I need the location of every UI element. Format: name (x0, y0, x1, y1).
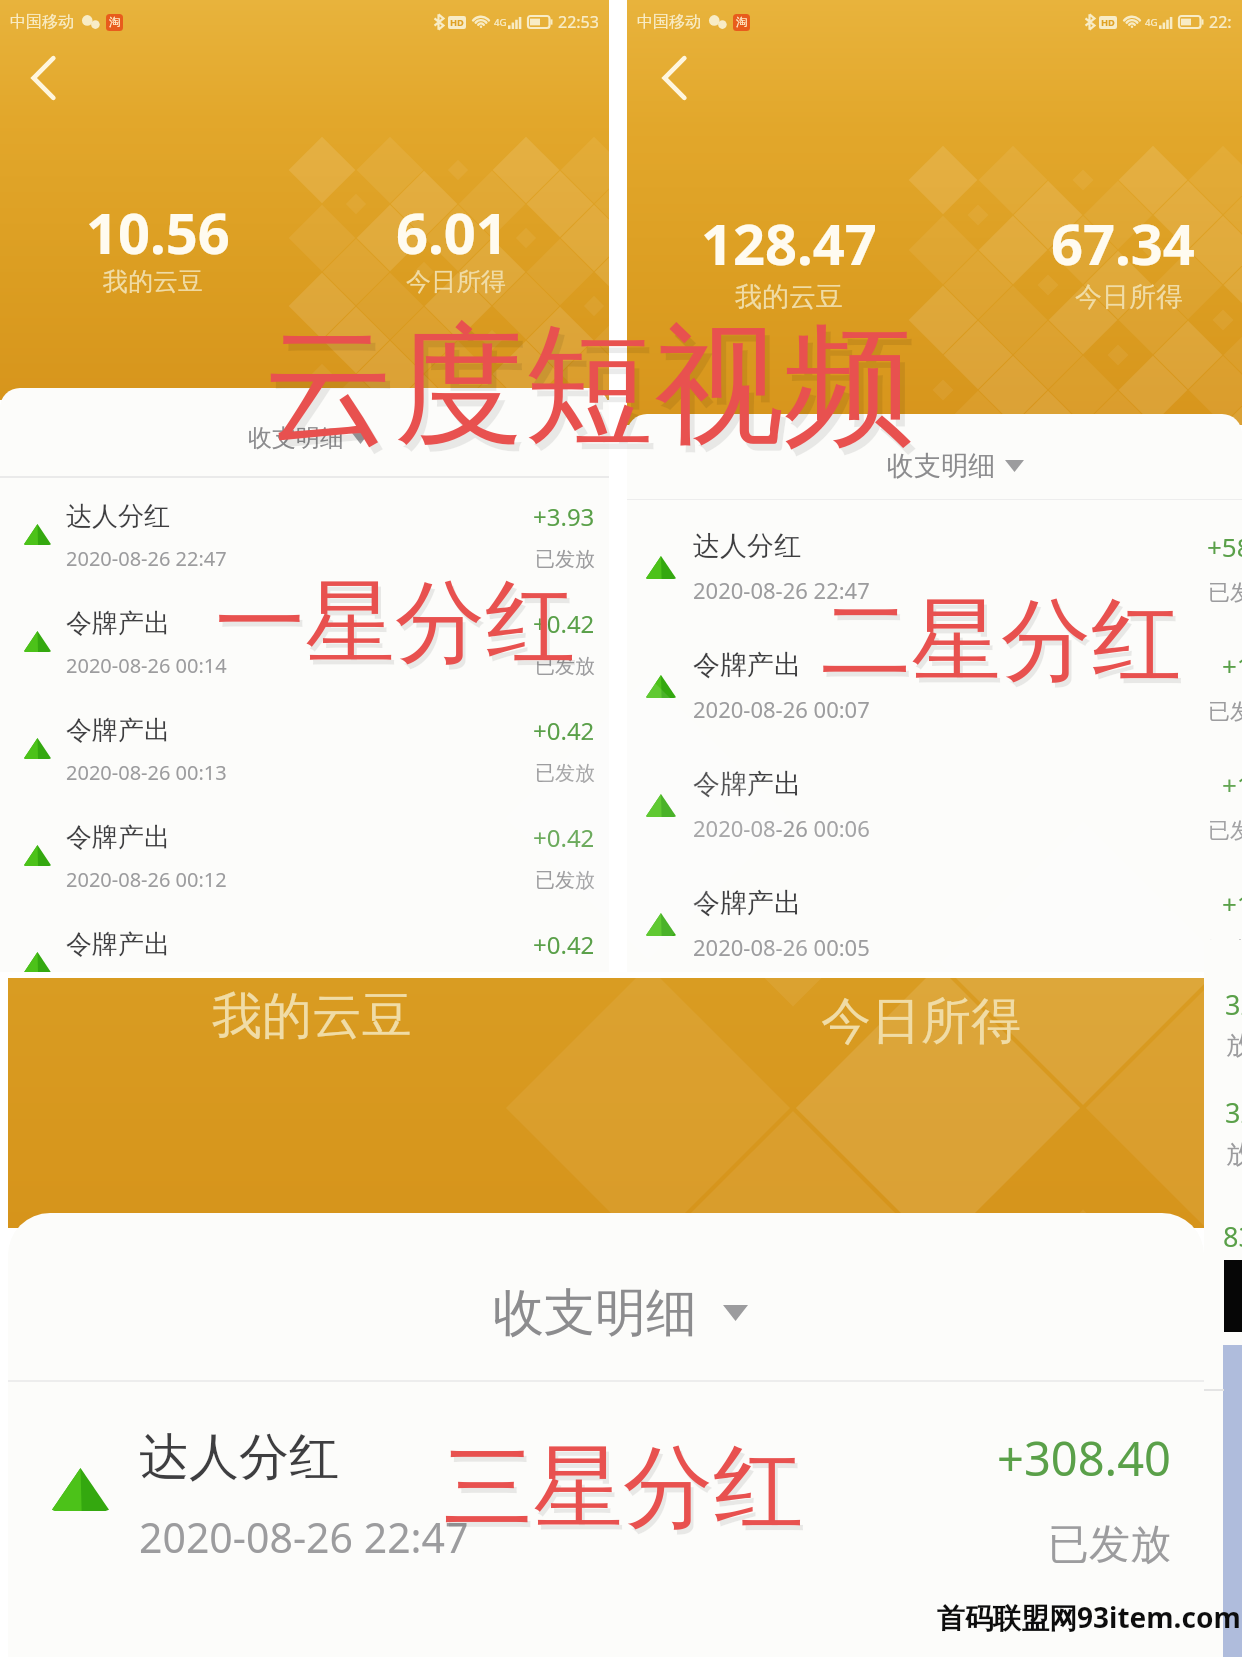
staticText: 令牌产出 (693, 767, 801, 801)
staticText: +0.42 (533, 607, 595, 640)
staticText: 已发放 (1048, 1519, 1171, 1571)
staticText: 2020-08-26 00:07 (693, 694, 870, 724)
staticText: +3.93 (533, 500, 595, 533)
button[interactable]: 令牌产出 (627, 648, 1242, 767)
staticText: 4G (1145, 16, 1158, 29)
staticText: 22: (1209, 11, 1232, 33)
staticText: +0.42 (533, 714, 595, 747)
staticText: 收支明细 (493, 1281, 697, 1345)
staticText: 22:53 (558, 11, 599, 33)
staticText: 中国移动 (637, 12, 701, 32)
button[interactable]: 收支明细 (877, 439, 1034, 493)
staticText: 云度短视频 (264, 305, 914, 469)
staticText: 令牌产出 (693, 886, 801, 920)
staticText: +0.42 (533, 928, 595, 961)
staticText: 收支明细 (248, 423, 344, 453)
button[interactable]: 令牌产出 (0, 821, 609, 928)
staticText: 6.01 (396, 194, 508, 270)
button[interactable]: Back (18, 52, 70, 104)
button[interactable]: 令牌产出 (0, 928, 609, 972)
staticText: HD (450, 16, 464, 29)
staticText: 10.56 (86, 194, 230, 270)
staticText: +58.2 (1207, 529, 1242, 564)
button[interactable]: 收支明细 (238, 413, 379, 463)
staticText: HD (1101, 16, 1115, 29)
staticText: 云度短视频 (269, 312, 919, 476)
staticText: +1.8 (1222, 767, 1242, 802)
staticText: 128.47 (701, 205, 877, 281)
staticText: 令牌产出 (693, 648, 801, 682)
staticText: 已发放 (1208, 579, 1242, 607)
staticText: 令牌产出 (66, 821, 170, 854)
staticText: 淘 (736, 15, 748, 30)
staticText: 达人分红 (139, 1426, 339, 1489)
button[interactable]: 达人分红 (0, 500, 609, 607)
staticText: 2020-08-26 00:13 (66, 759, 227, 786)
button[interactable]: 令牌产出 (0, 714, 609, 821)
button[interactable]: 令牌产出 (627, 767, 1242, 886)
staticText: 放 (1226, 1029, 1242, 1062)
staticText: 一星分红 (215, 566, 575, 679)
staticText: 令牌产出 (66, 928, 170, 961)
staticText: 我的云豆 (103, 266, 203, 297)
staticText: 今日所得 (1075, 280, 1183, 314)
staticText: 4G (494, 16, 507, 29)
staticText: 已发放 (535, 547, 595, 572)
staticText: 今日所得 (406, 266, 506, 297)
staticText: 淘 (109, 15, 121, 30)
staticText: 已发放 (535, 868, 595, 893)
staticText: 已发放 (535, 761, 595, 786)
button[interactable]: 达人分红 (8, 1426, 1204, 1636)
button[interactable]: 令牌产出 (627, 886, 1242, 972)
staticText: +0.42 (533, 821, 595, 854)
staticText: 二星分红 (821, 584, 1181, 697)
staticText: 今日所得 (821, 990, 1021, 1053)
staticText: 已发放 (1208, 817, 1242, 845)
staticText: 32 (1225, 1094, 1242, 1131)
staticText: 32 (1225, 986, 1242, 1023)
staticText: 二星分红 (824, 589, 1184, 702)
staticText: 我的云豆 (212, 985, 412, 1048)
staticText: 2020-08-26 00:06 (693, 813, 870, 843)
staticText: 一星分红 (218, 571, 578, 684)
staticText: 2020-08-26 00:14 (66, 652, 227, 679)
staticText: 2020-08-26 22:47 (139, 1509, 469, 1565)
button[interactable]: 达人分红 (627, 529, 1242, 648)
staticText: 中国移动 (10, 12, 74, 32)
staticText: 已发放 (1208, 698, 1242, 726)
staticText: +308.40 (997, 1426, 1171, 1490)
staticText: 令牌产出 (66, 714, 170, 747)
staticText: 2020-08-26 22:47 (693, 575, 870, 605)
staticText: 令牌产出 (66, 607, 170, 640)
staticText: 收支明细 (887, 449, 995, 483)
staticText: 我的云豆 (735, 280, 843, 314)
staticText: 三星分红 (443, 1431, 803, 1544)
staticText: 放 (1226, 1138, 1242, 1171)
staticText: 三星分红 (446, 1436, 806, 1549)
staticText: +1.8 (1222, 886, 1242, 921)
staticText: 已发放 (535, 654, 595, 679)
button[interactable]: 收支明细 (475, 1263, 766, 1363)
staticText: 2020-08-26 22:47 (66, 545, 227, 572)
staticText: 2020-08-26 00:05 (693, 932, 870, 962)
staticText: 83 (1223, 1218, 1242, 1255)
staticText: 达人分红 (693, 529, 801, 563)
staticText: 首码联盟网93item.com (937, 1598, 1241, 1636)
button[interactable]: 令牌产出 (0, 607, 609, 714)
staticText: 67.34 (1051, 205, 1195, 281)
staticText: 达人分红 (66, 500, 170, 533)
staticText: +1.8 (1222, 648, 1242, 683)
staticText: 2020-08-26 00:12 (66, 866, 227, 893)
button[interactable]: Back (649, 52, 701, 104)
